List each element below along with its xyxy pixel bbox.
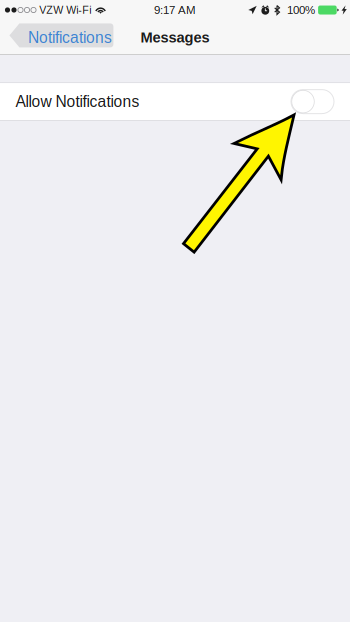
staticText: VZW Wi-Fi bbox=[39, 4, 91, 16]
staticText: Messages bbox=[140, 29, 209, 46]
staticText: 100% bbox=[287, 4, 315, 16]
button[interactable]: Notifications bbox=[9, 23, 113, 47]
staticText: Allow Notifications bbox=[15, 93, 139, 110]
staticText: Notifications bbox=[28, 29, 112, 46]
staticText: 9:17 AM bbox=[154, 4, 196, 16]
button[interactable]: Allow Notifications bbox=[0, 83, 350, 120]
